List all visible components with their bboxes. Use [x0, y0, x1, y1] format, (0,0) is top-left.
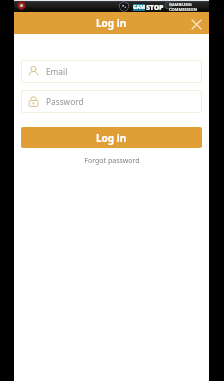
- button[interactable]: Forgot password: [14, 156, 209, 166]
- staticText: Email: [46, 66, 68, 77]
- button[interactable]: Log in: [21, 127, 202, 148]
- staticText: STOP: [146, 3, 164, 13]
- staticText: GAMBLING: [169, 2, 192, 7]
- staticText: Log in: [96, 131, 127, 145]
- staticText: Log in: [96, 16, 127, 30]
- staticText: Forgot password: [84, 156, 140, 166]
- staticText: Password: [46, 96, 84, 107]
- staticText: GAM: [133, 4, 145, 11]
- staticText: COMMISSION: [169, 7, 198, 12]
- button[interactable]: Email: [21, 60, 202, 83]
- button[interactable]: Close: [185, 12, 207, 34]
- button[interactable]: Password: [21, 90, 202, 113]
